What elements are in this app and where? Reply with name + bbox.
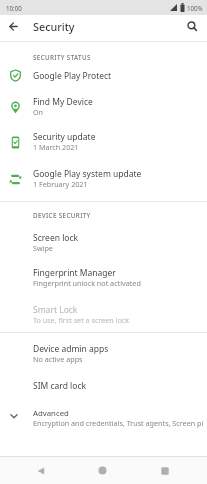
staticText: Swipe bbox=[33, 243, 53, 253]
staticText: Google Play Protect bbox=[33, 70, 112, 82]
staticText: SECURITY STATUS bbox=[33, 53, 91, 62]
button[interactable]: Google Play system update bbox=[0, 159, 207, 199]
button[interactable] bbox=[37, 467, 45, 475]
staticText: 100% bbox=[187, 4, 203, 12]
staticText: Screen lock bbox=[33, 232, 79, 244]
staticText: Google Play system update bbox=[33, 168, 142, 180]
staticText: To use, first set a screen lock bbox=[33, 315, 130, 325]
button[interactable]: Smart Lock bbox=[0, 301, 207, 329]
staticText: 10:00 bbox=[6, 4, 22, 12]
button[interactable] bbox=[0, 13, 28, 39]
staticText: Security update bbox=[33, 131, 96, 143]
staticText: Encryption and credentials, Trust agents… bbox=[33, 418, 204, 428]
button[interactable]: Fingerprint Manager bbox=[0, 255, 207, 301]
staticText: 1 February 2021 bbox=[33, 179, 88, 189]
button[interactable]: Google Play Protect bbox=[0, 62, 207, 89]
button[interactable] bbox=[98, 466, 107, 475]
staticText: Fingerprint Manager bbox=[33, 267, 116, 279]
button[interactable] bbox=[161, 467, 169, 475]
staticText: 1 March 2021 bbox=[33, 142, 79, 152]
button[interactable]: Security update bbox=[0, 125, 207, 159]
staticText: Advanced bbox=[33, 408, 69, 419]
staticText: SIM card lock bbox=[33, 380, 87, 392]
button[interactable]: SIM card lock bbox=[0, 375, 207, 397]
staticText: Find My Device bbox=[33, 96, 93, 108]
button[interactable]: Device admin apps bbox=[0, 333, 207, 375]
button[interactable]: Screen lock bbox=[0, 230, 207, 255]
button[interactable] bbox=[177, 13, 207, 39]
staticText: Fingerprint unlock not activated bbox=[33, 278, 141, 288]
staticText: Smart Lock bbox=[33, 304, 78, 316]
staticText: DEVICE SECURITY bbox=[33, 211, 91, 220]
staticText: No active apps bbox=[33, 354, 83, 364]
staticText: Security bbox=[33, 19, 75, 34]
button[interactable]: Advanced bbox=[0, 397, 207, 440]
staticText: On bbox=[33, 107, 44, 117]
staticText: Device admin apps bbox=[33, 343, 109, 355]
button[interactable]: Find My Device bbox=[0, 89, 207, 125]
